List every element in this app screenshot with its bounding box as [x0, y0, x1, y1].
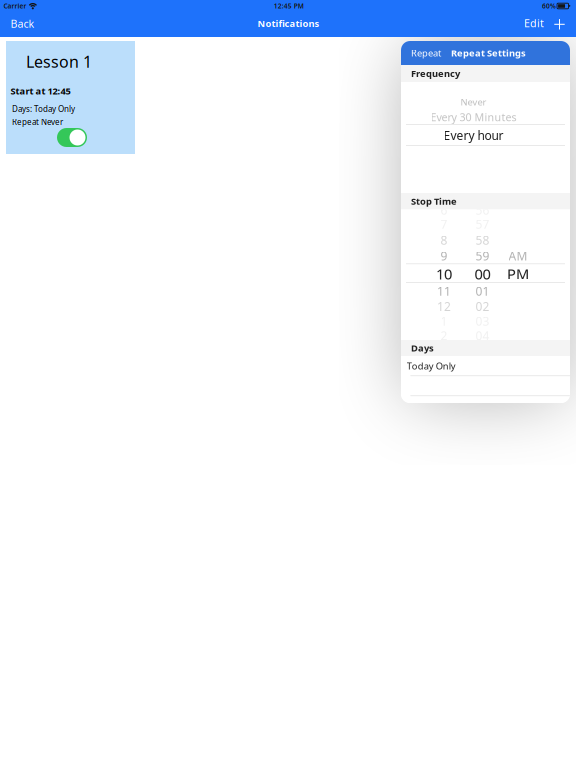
staticText: 12	[437, 298, 451, 314]
button[interactable]: Back	[3, 14, 41, 34]
staticText: 7	[440, 216, 447, 232]
staticText: AM	[508, 248, 527, 264]
staticText: Notifications	[257, 17, 319, 30]
staticText: Start at 12:45	[10, 85, 70, 97]
staticText: 58	[475, 232, 489, 248]
staticText: PM	[507, 264, 529, 284]
staticText: Repeat	[411, 47, 441, 59]
staticText: 10	[436, 264, 452, 284]
staticText: 57	[475, 216, 489, 232]
button[interactable]: Repeat	[406, 41, 446, 65]
staticText: 9	[440, 248, 447, 264]
button[interactable]: Add	[546, 14, 572, 34]
staticText: Today Only	[407, 360, 456, 372]
staticText: Frequency	[411, 67, 460, 80]
staticText: 00	[474, 264, 490, 284]
staticText: Stop Time	[411, 195, 457, 207]
staticText: 1	[440, 313, 447, 329]
staticText: Edit	[524, 16, 544, 30]
staticText: Lesson 1	[26, 51, 92, 72]
staticText: 02	[475, 298, 489, 314]
staticText: 60%	[542, 1, 556, 10]
staticText: 6	[440, 202, 447, 218]
staticText: 11	[437, 283, 451, 299]
staticText: Carrier	[3, 1, 26, 10]
staticText: Repeat Settings	[451, 47, 526, 59]
button[interactable]: Edit	[517, 13, 551, 33]
staticText: Never	[460, 96, 486, 108]
staticText: 03	[475, 313, 489, 329]
staticText: Days: Today Only	[12, 103, 75, 114]
staticText: Repeat Never	[12, 117, 63, 127]
staticText: 8	[440, 232, 447, 248]
staticText: Back	[10, 17, 34, 31]
staticText: Every hour	[443, 127, 503, 143]
button[interactable]: Enable lesson	[57, 128, 87, 147]
staticText: Every 30 Minutes	[430, 110, 516, 124]
staticText: 12:45 PM	[274, 1, 304, 10]
staticText: 2	[440, 327, 447, 343]
staticText: 04	[475, 327, 489, 343]
staticText: 59	[475, 248, 489, 264]
staticText: 56	[475, 202, 489, 218]
staticText: Days	[411, 342, 434, 354]
button[interactable]: Today Only	[401, 356, 570, 376]
staticText: 01	[475, 283, 489, 299]
